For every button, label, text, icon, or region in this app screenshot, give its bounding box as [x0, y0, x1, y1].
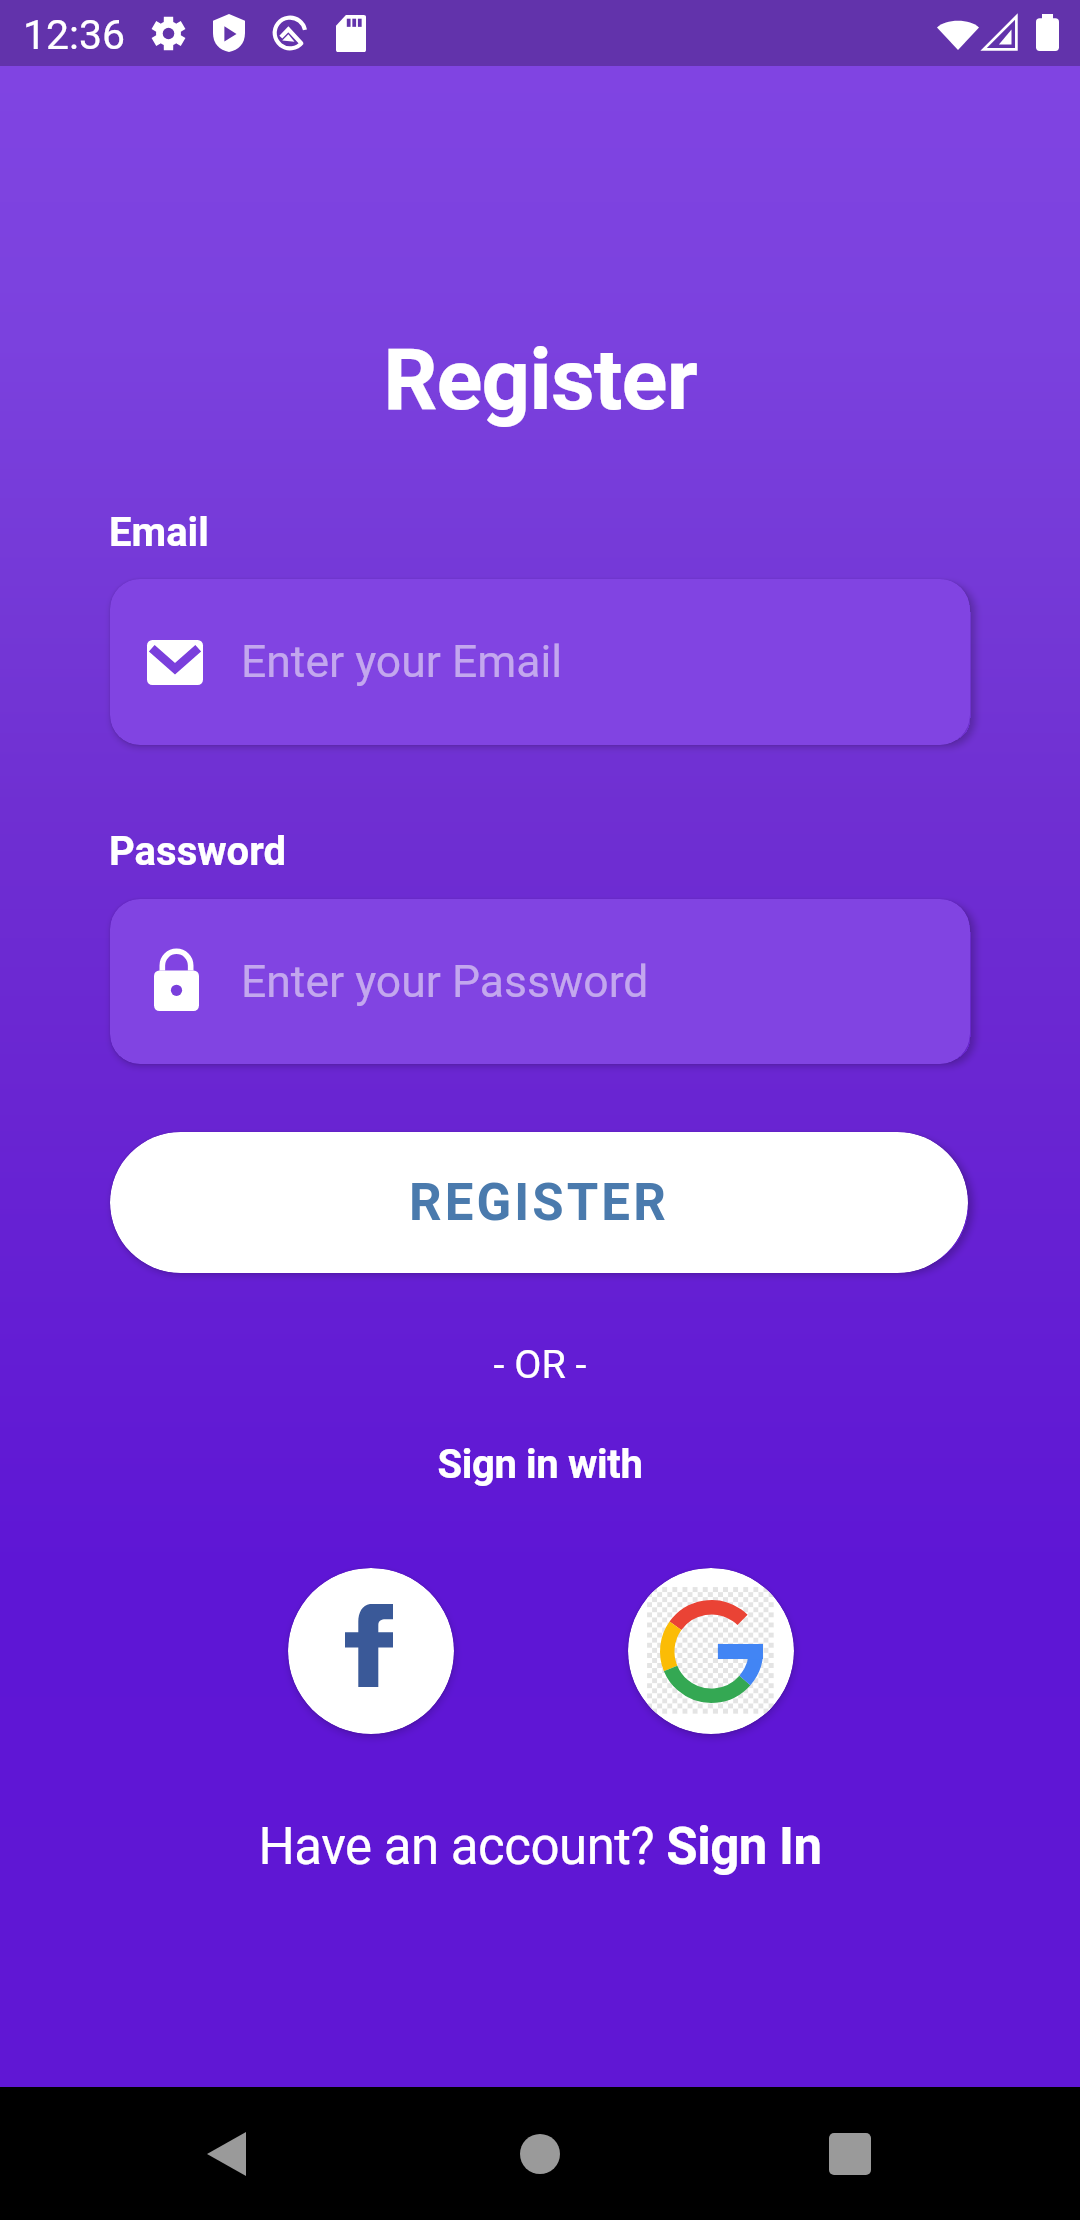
staticText: Password: [109, 828, 287, 875]
staticText: Enter your Password: [241, 956, 649, 1008]
button[interactable]: Email input: [110, 579, 970, 745]
staticText: Enter your Email: [241, 636, 563, 688]
button[interactable]: Password input: [110, 899, 970, 1064]
staticText: Sign in with: [0, 1441, 1080, 1488]
staticText: Email: [109, 509, 209, 556]
staticText: REGISTER: [409, 1173, 669, 1233]
button[interactable]: Have an account? Sign In: [0, 1817, 1080, 1877]
button[interactable]: Recent apps: [795, 2099, 905, 2209]
button[interactable]: Sign in with Facebook: [288, 1568, 454, 1734]
staticText: Register: [0, 330, 1080, 430]
staticText: 12:36: [23, 11, 126, 59]
button[interactable]: Home: [485, 2099, 595, 2209]
button[interactable]: Back: [171, 2099, 281, 2209]
button[interactable]: Sign in with Google: [628, 1568, 794, 1734]
button[interactable]: REGISTER: [110, 1132, 968, 1273]
staticText: - OR -: [0, 1341, 1080, 1387]
